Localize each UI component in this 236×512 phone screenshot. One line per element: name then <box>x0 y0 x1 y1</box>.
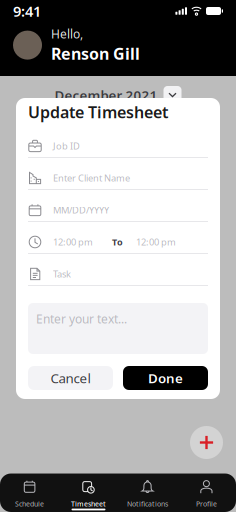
staticText: Enter Client Name <box>53 172 130 184</box>
staticText: To <box>112 236 123 248</box>
staticText: Renson Gill <box>51 43 140 64</box>
button[interactable]: Schedule <box>0 473 59 512</box>
button[interactable]: Job ID <box>28 126 208 158</box>
button[interactable]: Notifications <box>118 473 177 512</box>
button[interactable]: Timesheet <box>59 473 118 512</box>
staticText: Done <box>148 369 183 387</box>
button[interactable]: Enter Client Name <box>28 158 208 190</box>
staticText: Cancel <box>50 369 90 387</box>
staticText: Task <box>53 268 71 280</box>
staticText: Enter your text... <box>36 311 127 327</box>
staticText: 12:00 pm <box>53 236 93 248</box>
button[interactable]: Add timesheet entry <box>190 426 223 459</box>
button[interactable]: Choose month <box>163 86 181 104</box>
staticText: December 2021 <box>54 86 157 104</box>
staticText: 9:41 <box>13 1 41 21</box>
button[interactable]: Done <box>123 366 208 390</box>
staticText: Job ID <box>53 140 80 152</box>
button[interactable]: Task <box>28 254 208 286</box>
staticText: MM/DD/YYYY <box>53 204 109 216</box>
button[interactable]: MM/DD/YYYY <box>28 190 208 222</box>
button[interactable]: 12:00 pm <box>28 231 93 253</box>
staticText: Schedule <box>15 499 44 508</box>
staticText: Profile <box>196 499 217 508</box>
button[interactable]: 12:00 pm <box>136 231 208 253</box>
button[interactable]: Cancel <box>28 366 113 390</box>
staticText: 12:00 pm <box>136 236 176 248</box>
staticText: Notifications <box>127 499 168 508</box>
staticText: Timesheet <box>71 499 106 508</box>
staticText: Update Timesheet <box>28 101 168 123</box>
staticText: Hello, <box>51 26 83 42</box>
button[interactable]: Profile <box>177 473 236 512</box>
